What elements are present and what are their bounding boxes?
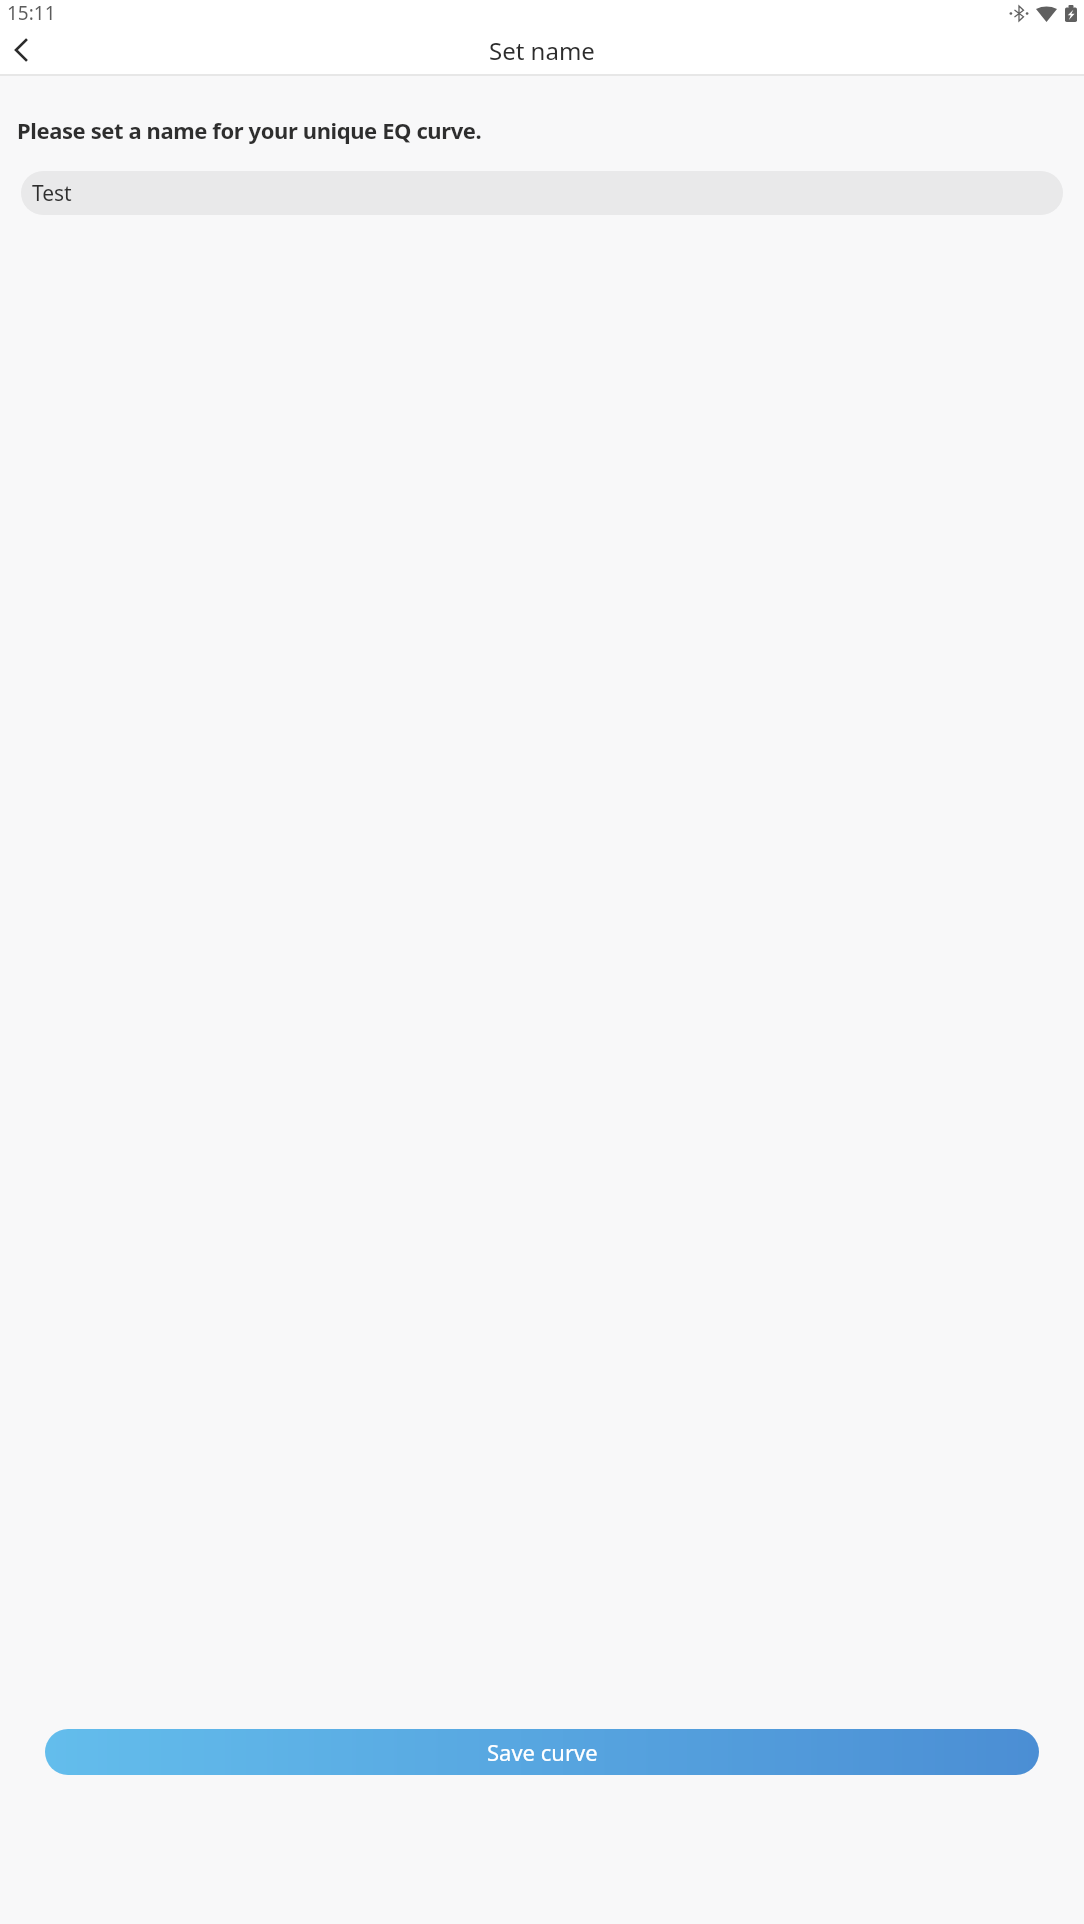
staticText: Please set a name for your unique EQ cur…	[17, 115, 482, 145]
staticText: Set name	[489, 34, 595, 67]
staticText: Save curve	[487, 1737, 598, 1767]
staticText: Test	[32, 179, 72, 208]
staticText: 15:11	[7, 0, 56, 26]
button[interactable]: Save curve	[45, 1729, 1039, 1775]
button[interactable]: Test	[21, 171, 1063, 215]
button[interactable]: Back	[0, 26, 42, 74]
